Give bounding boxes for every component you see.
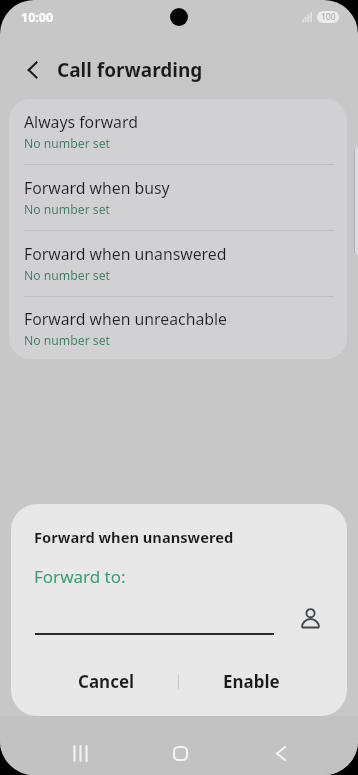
staticText: Enable <box>223 670 280 693</box>
staticText: No number set <box>24 201 110 218</box>
button[interactable]: Forward when busy <box>9 165 347 230</box>
staticText: Forward when busy <box>24 177 170 199</box>
staticText: Call forwarding <box>57 57 203 83</box>
button[interactable]: Cancel <box>35 661 178 701</box>
staticText: Forward when unanswered <box>34 527 234 547</box>
staticText: Always forward <box>24 111 138 133</box>
button[interactable]: Select contact <box>294 602 326 634</box>
button[interactable]: Home <box>162 735 198 771</box>
staticText: 100 <box>321 11 336 23</box>
button[interactable]: Recent apps <box>62 735 98 771</box>
button[interactable]: Back <box>263 735 299 771</box>
staticText: No number set <box>24 267 110 284</box>
button[interactable]: Enable <box>179 661 323 701</box>
button[interactable]: Forward when unanswered <box>9 231 347 296</box>
staticText: Cancel <box>78 670 135 693</box>
staticText: 10:00 <box>21 9 54 26</box>
staticText: No number set <box>24 135 110 152</box>
button[interactable]: Navigate up <box>17 55 47 85</box>
button[interactable]: Forward when unreachable <box>9 297 347 359</box>
button[interactable]: Always forward <box>9 99 347 164</box>
staticText: Forward to: <box>34 565 126 588</box>
staticText: Forward when unreachable <box>24 308 227 330</box>
staticText: Forward when unanswered <box>24 243 227 265</box>
staticText: No number set <box>24 332 110 349</box>
